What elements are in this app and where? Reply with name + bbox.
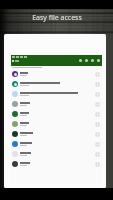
button[interactable]: Select: [96, 83, 99, 86]
button[interactable]: Select: [11, 99, 102, 109]
button[interactable]: Action: [97, 59, 100, 62]
button[interactable]: Select: [96, 103, 99, 106]
button[interactable]: Select: [96, 143, 99, 146]
button[interactable]: Select: [11, 109, 102, 119]
staticText: Easy file access: [32, 13, 82, 23]
button[interactable]: Action: [79, 59, 82, 62]
button[interactable]: Select: [96, 123, 99, 126]
button[interactable]: Select: [11, 79, 102, 89]
button[interactable]: Select: [11, 159, 102, 169]
button[interactable]: Select: [96, 93, 99, 96]
button[interactable]: Select: [11, 139, 102, 149]
button[interactable]: Select: [96, 133, 99, 136]
button[interactable]: Select: [96, 153, 99, 156]
button[interactable]: Select: [11, 149, 102, 159]
button[interactable]: Select: [11, 119, 102, 129]
button[interactable]: Select: [11, 69, 102, 79]
button[interactable]: Select: [11, 89, 102, 99]
button[interactable]: Select: [96, 113, 99, 116]
button[interactable]: Select: [11, 129, 102, 139]
button[interactable]: Select: [96, 163, 99, 166]
button[interactable]: Action: [85, 59, 88, 62]
button[interactable]: Select: [96, 73, 99, 76]
button[interactable]: Action: [91, 59, 94, 62]
